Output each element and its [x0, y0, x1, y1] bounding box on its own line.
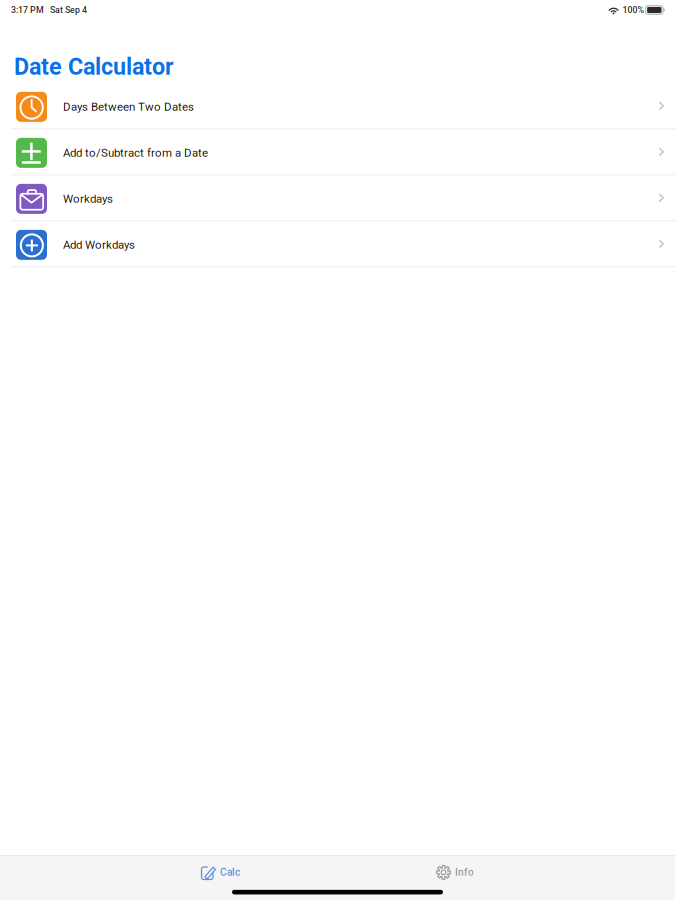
staticText: Add Workdays	[63, 238, 135, 251]
button[interactable]: Workdays	[0, 175, 675, 221]
staticText: Calc	[220, 866, 240, 878]
staticText: Sat Sep 4	[50, 5, 87, 15]
staticText: Workdays	[63, 192, 113, 205]
button[interactable]: Info	[424, 854, 486, 890]
staticText: Info	[455, 866, 474, 878]
staticText: Add to/Subtract from a Date	[63, 146, 208, 159]
button[interactable]: Calc	[189, 854, 252, 890]
button[interactable]: Days Between Two Dates	[0, 83, 675, 129]
staticText: Days Between Two Dates	[63, 100, 194, 113]
staticText: 3:17 PM	[11, 5, 44, 15]
button[interactable]: Add Workdays	[0, 221, 675, 267]
button[interactable]: Add to/Subtract from a Date	[0, 129, 675, 175]
staticText: 100%	[623, 5, 644, 15]
staticText: Date Calculator	[14, 53, 174, 80]
